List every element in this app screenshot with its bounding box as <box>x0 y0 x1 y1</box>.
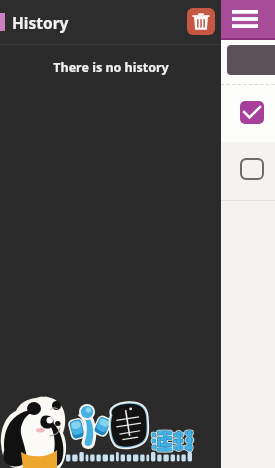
button[interactable]: Open navigation menu <box>221 0 275 40</box>
button[interactable]: Checked option <box>240 101 264 124</box>
button[interactable]: Clear history <box>187 8 215 35</box>
staticText: There is no history <box>53 59 169 76</box>
staticText: History <box>12 12 69 33</box>
button[interactable]: Unchecked option <box>240 158 264 180</box>
